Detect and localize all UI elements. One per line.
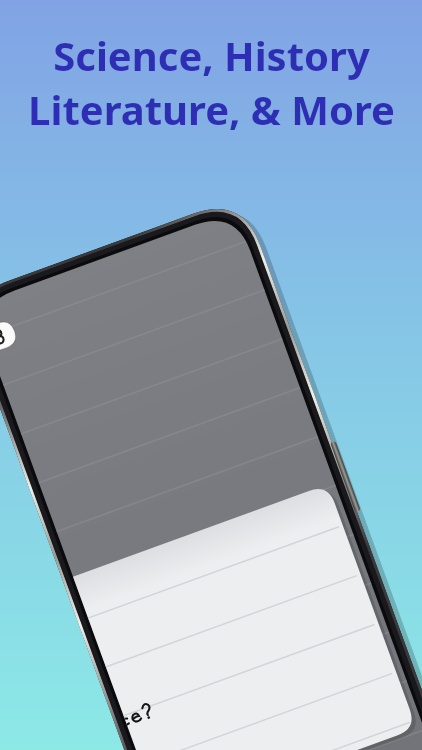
staticText: Literature, & More bbox=[28, 82, 395, 136]
staticText: Science, History bbox=[53, 28, 370, 82]
button[interactable]: App preview on phone bbox=[0, 0, 422, 750]
button[interactable]: Science, History bbox=[8, 28, 414, 136]
